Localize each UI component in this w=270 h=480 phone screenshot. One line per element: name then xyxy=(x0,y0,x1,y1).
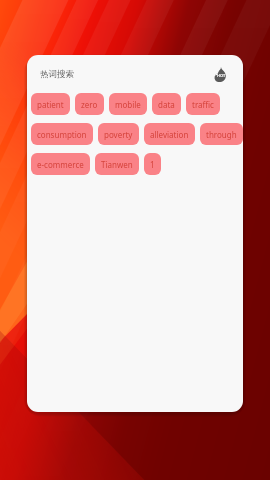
staticText: alleviation xyxy=(150,129,189,140)
staticText: through xyxy=(206,129,237,140)
staticText: patient xyxy=(37,99,64,110)
staticText: e-commerce xyxy=(37,159,84,170)
button[interactable]: alleviation xyxy=(144,123,195,145)
staticText: mobile xyxy=(115,99,141,110)
staticText: consumption xyxy=(37,129,87,140)
button[interactable]: mobile xyxy=(109,93,147,115)
button[interactable]: zero xyxy=(75,93,104,115)
button[interactable]: e-commerce xyxy=(31,153,90,175)
button[interactable]: consumption xyxy=(31,123,93,145)
button[interactable]: traffic xyxy=(186,93,220,115)
staticText: Tianwen xyxy=(101,159,133,170)
staticText: traffic xyxy=(192,99,214,110)
staticText: data xyxy=(158,99,175,110)
button[interactable]: 1 xyxy=(144,153,161,175)
button[interactable]: patient xyxy=(31,93,70,115)
button[interactable]: Hot xyxy=(212,66,228,82)
button[interactable]: Tianwen xyxy=(95,153,139,175)
staticText: 热词搜索 xyxy=(40,69,74,80)
staticText: HOT xyxy=(217,73,226,78)
staticText: poverty xyxy=(104,129,133,140)
button[interactable]: poverty xyxy=(98,123,139,145)
button[interactable]: data xyxy=(152,93,181,115)
staticText: zero xyxy=(81,99,98,110)
staticText: 1 xyxy=(150,159,155,170)
button[interactable]: through xyxy=(200,123,243,145)
